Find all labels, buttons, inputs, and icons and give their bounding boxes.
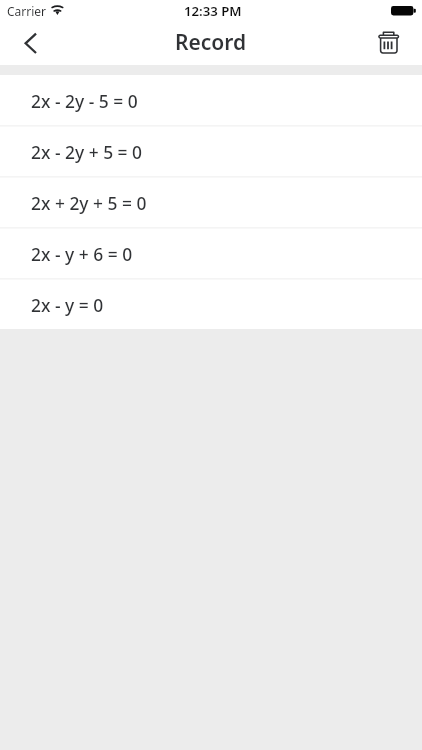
button[interactable]: 2x - y + 6 = 0 — [0, 228, 422, 278]
staticText: Record — [175, 28, 247, 57]
staticText: 2x - y + 6 = 0 — [31, 242, 133, 266]
staticText: Carrier — [7, 3, 47, 19]
button[interactable]: 2x - 2y + 5 = 0 — [0, 126, 422, 176]
button[interactable]: Delete — [364, 22, 412, 65]
button[interactable]: 2x - y = 0 — [0, 279, 422, 329]
button[interactable]: Back — [6, 22, 54, 65]
staticText: 12:33 PM — [184, 2, 242, 20]
staticText: 2x - 2y - 5 = 0 — [31, 89, 138, 113]
button[interactable]: 2x - 2y - 5 = 0 — [0, 75, 422, 125]
staticText: 2x + 2y + 5 = 0 — [31, 191, 147, 215]
staticText: 2x - y = 0 — [31, 293, 104, 317]
staticText: 2x - 2y + 5 = 0 — [31, 140, 143, 164]
button[interactable]: 2x + 2y + 5 = 0 — [0, 177, 422, 227]
